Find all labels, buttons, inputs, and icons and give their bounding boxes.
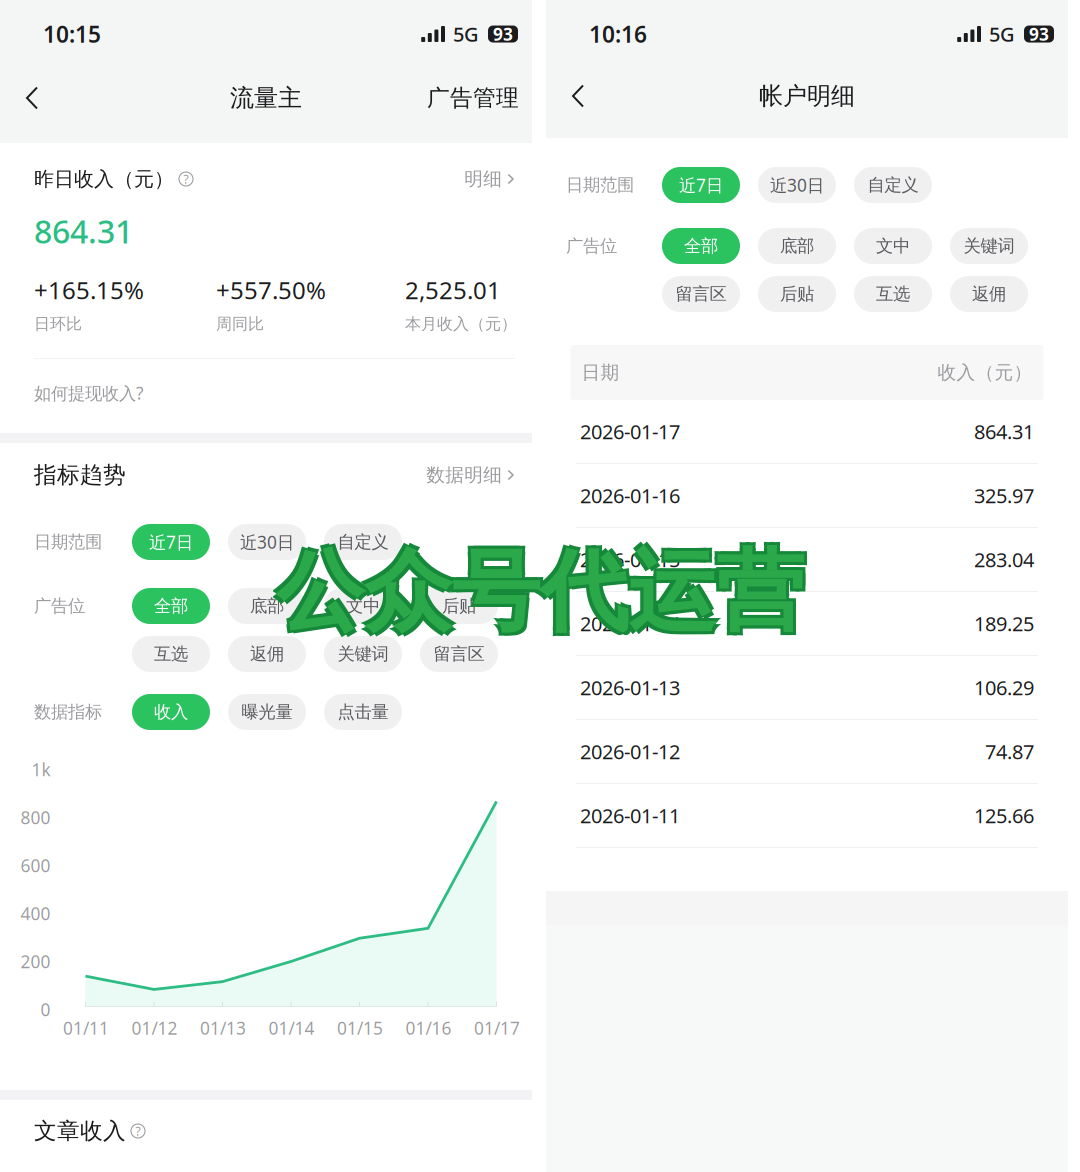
staticText: 点击量 (337, 701, 388, 723)
staticText: 189.25 (974, 610, 1034, 637)
button[interactable]: 返佣 (228, 636, 306, 672)
staticText: 0 (40, 998, 50, 1021)
staticText: 01/13 (200, 1016, 246, 1039)
staticText: 1k (31, 758, 50, 781)
staticText: 2026-01-13 (580, 674, 680, 701)
button[interactable]: 文中 (324, 588, 402, 624)
staticText: 收入 (154, 701, 188, 723)
staticText: 广告管理 (427, 84, 519, 112)
button[interactable]: 留言区 (662, 276, 740, 312)
staticText: 返佣 (972, 283, 1006, 305)
button[interactable]: 2026-01-11 (546, 784, 1068, 848)
staticText: 周同比 (216, 314, 264, 334)
button[interactable]: Back (558, 68, 598, 124)
staticText: 864.31 (34, 210, 133, 252)
staticText: 明细 (464, 167, 502, 190)
button[interactable]: 全部 (132, 588, 210, 624)
staticText: 01/17 (474, 1016, 520, 1039)
staticText: 10:16 (589, 19, 647, 49)
staticText: 曝光量 (241, 701, 292, 723)
button[interactable]: 底部 (758, 228, 836, 264)
button[interactable]: 明细 (464, 167, 515, 190)
button[interactable]: 收入 (132, 694, 210, 730)
button[interactable]: 自定义 (854, 167, 932, 203)
button[interactable]: 后贴 (420, 588, 498, 624)
staticText: ? (183, 171, 188, 187)
button[interactable]: 点击量 (324, 694, 402, 730)
staticText: 全部 (684, 235, 718, 257)
staticText: 文中 (346, 595, 380, 617)
staticText: +557.50% (216, 274, 326, 306)
staticText: 公众号代运营 (273, 535, 801, 643)
staticText: 400 (20, 902, 50, 925)
staticText: 文章收入 (34, 1117, 126, 1145)
staticText: 数据明细 (426, 463, 502, 486)
staticText: 全部 (154, 595, 188, 617)
button[interactable]: 2026-01-13 (546, 656, 1068, 720)
button[interactable]: 关键词 (324, 636, 402, 672)
staticText: 106.29 (974, 674, 1034, 701)
button[interactable]: 全部 (662, 228, 740, 264)
staticText: 返佣 (250, 643, 284, 665)
button[interactable]: 自定义 (324, 524, 402, 560)
staticText: 关键词 (963, 235, 1014, 257)
staticText: 5G (453, 21, 479, 47)
staticText: 2026-01-16 (580, 482, 680, 509)
button[interactable]: 2026-01-17 (546, 400, 1068, 464)
staticText: 600 (20, 854, 50, 877)
staticText: 74.87 (985, 738, 1034, 765)
staticText: 留言区 (675, 283, 726, 305)
button[interactable]: Back (12, 70, 52, 126)
staticText: 2,525.01 (405, 274, 501, 306)
staticText: 后贴 (442, 595, 476, 617)
button[interactable]: 底部 (228, 588, 306, 624)
staticText: 数据指标 (34, 701, 102, 723)
button[interactable]: 如何提现收入? (34, 359, 515, 435)
button[interactable]: 关键词 (950, 228, 1028, 264)
staticText: 流量主 (230, 83, 302, 113)
staticText: +165.15% (34, 274, 144, 306)
button[interactable]: 互选 (854, 276, 932, 312)
button[interactable]: 留言区 (420, 636, 498, 672)
button[interactable]: 2026-01-14 (546, 592, 1068, 656)
staticText: 文中 (876, 235, 910, 257)
staticText: 近7日 (679, 173, 723, 196)
staticText: 公众号代运营 (273, 541, 801, 649)
staticText: 283.04 (974, 546, 1034, 573)
staticText: 200 (20, 950, 50, 973)
button[interactable]: 近7日 (132, 524, 210, 560)
button[interactable]: 2026-01-16 (546, 464, 1068, 528)
staticText: 01/15 (337, 1016, 383, 1039)
staticText: 自定义 (337, 531, 388, 553)
button[interactable]: 近30日 (228, 524, 306, 560)
button[interactable]: 文中 (854, 228, 932, 264)
button[interactable]: 互选 (132, 636, 210, 672)
button[interactable]: 近30日 (758, 167, 836, 203)
button[interactable]: 2026-01-12 (546, 720, 1068, 784)
staticText: 125.66 (974, 802, 1034, 829)
staticText: 01/16 (405, 1016, 451, 1039)
button[interactable]: 返佣 (950, 276, 1028, 312)
staticText: 昨日收入（元） (34, 167, 174, 191)
staticText: 日期范围 (34, 531, 102, 553)
staticText: 93 (1029, 22, 1049, 45)
staticText: 864.31 (974, 418, 1034, 445)
staticText: 收入（元） (937, 361, 1032, 384)
staticText: 本月收入（元） (405, 314, 517, 334)
staticText: 93 (493, 22, 513, 45)
staticText: 5G (989, 21, 1015, 47)
staticText: 2026-01-14 (580, 610, 680, 637)
button[interactable]: 数据明细 (426, 463, 515, 486)
staticText: 关键词 (337, 643, 388, 665)
button[interactable]: 近7日 (662, 167, 740, 203)
staticText: 2026-01-15 (580, 546, 680, 573)
button[interactable]: 后贴 (758, 276, 836, 312)
staticText: 2026-01-17 (580, 418, 680, 445)
button[interactable]: 2026-01-15 (546, 528, 1068, 592)
staticText: 2026-01-12 (580, 738, 680, 765)
staticText: 325.97 (974, 482, 1034, 509)
button[interactable]: 广告管理 (427, 70, 519, 126)
button[interactable]: 曝光量 (228, 694, 306, 730)
staticText: 底部 (250, 595, 284, 617)
staticText: 互选 (876, 283, 910, 305)
